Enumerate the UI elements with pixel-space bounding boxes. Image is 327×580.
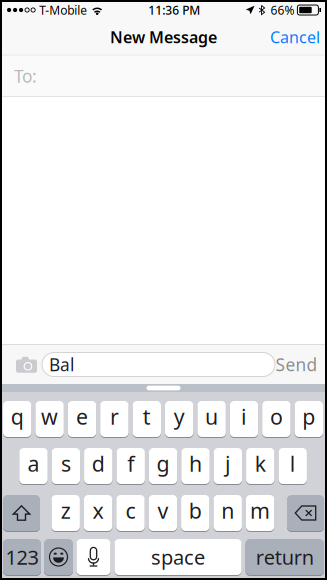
button[interactable]: Dictation xyxy=(76,539,110,575)
button[interactable]: l xyxy=(278,448,307,484)
staticText: b xyxy=(189,496,202,525)
button[interactable]: return xyxy=(245,539,324,575)
button[interactable]: a xyxy=(19,448,48,484)
button[interactable]: b xyxy=(181,495,209,531)
staticText: v xyxy=(157,496,168,525)
staticText: a xyxy=(27,449,39,478)
button[interactable]: Delete xyxy=(287,495,324,531)
staticText: j xyxy=(225,449,231,478)
staticText: y xyxy=(174,402,185,431)
staticText: t xyxy=(143,402,151,431)
staticText: space xyxy=(151,544,205,570)
button[interactable]: Camera xyxy=(11,348,42,380)
button[interactable]: t xyxy=(133,401,161,437)
button[interactable]: j xyxy=(214,448,242,484)
button[interactable]: Send xyxy=(275,348,318,380)
button[interactable]: q xyxy=(3,401,31,437)
button[interactable]: x xyxy=(84,495,112,531)
button[interactable]: h xyxy=(181,448,210,484)
button[interactable]: z xyxy=(51,495,80,531)
button[interactable]: r xyxy=(100,401,129,437)
staticText: l xyxy=(290,449,296,478)
button[interactable]: g xyxy=(149,448,177,484)
button[interactable]: o xyxy=(262,401,291,437)
staticText: Bal xyxy=(49,353,74,376)
staticText: z xyxy=(61,496,71,525)
button[interactable]: f xyxy=(116,448,145,484)
staticText: g xyxy=(157,449,170,478)
staticText: 123 xyxy=(5,544,38,570)
staticText: q xyxy=(11,402,24,431)
staticText: e xyxy=(76,402,88,431)
staticText: T-Mobile xyxy=(39,2,87,18)
button[interactable]: space xyxy=(114,539,241,575)
staticText: 11:36 PM xyxy=(148,2,200,18)
staticText: k xyxy=(255,449,266,478)
staticText: Send xyxy=(275,353,317,376)
button[interactable]: p xyxy=(295,401,323,437)
button[interactable]: n xyxy=(213,495,242,531)
button[interactable]: 123 xyxy=(3,539,41,575)
staticText: f xyxy=(127,449,134,478)
staticText: h xyxy=(189,449,202,478)
button[interactable]: i xyxy=(230,401,258,437)
staticText: i xyxy=(241,402,247,431)
button[interactable]: d xyxy=(84,448,112,484)
button[interactable]: Cancel xyxy=(260,18,327,56)
staticText: New Message xyxy=(110,26,217,48)
staticText: x xyxy=(93,496,104,525)
button[interactable]: Emoji xyxy=(44,539,73,575)
staticText: 66% xyxy=(270,2,294,18)
button[interactable]: e xyxy=(68,401,96,437)
button[interactable]: y xyxy=(165,401,193,437)
staticText: To: xyxy=(14,64,37,87)
button[interactable]: w xyxy=(35,401,64,437)
staticText: r xyxy=(110,402,119,431)
button[interactable]: s xyxy=(52,448,80,484)
staticText: u xyxy=(205,402,218,431)
staticText: s xyxy=(61,449,71,478)
staticText: m xyxy=(250,496,270,525)
button[interactable]: k xyxy=(246,448,274,484)
button[interactable]: m xyxy=(246,495,274,531)
button[interactable]: v xyxy=(149,495,177,531)
staticText: return xyxy=(256,544,314,570)
button[interactable]: u xyxy=(197,401,226,437)
staticText: o xyxy=(270,402,283,431)
staticText: w xyxy=(41,402,58,431)
button[interactable]: Shift xyxy=(3,495,40,531)
staticText: n xyxy=(221,496,234,525)
staticText: c xyxy=(125,496,135,525)
staticText: d xyxy=(92,449,105,478)
button[interactable]: c xyxy=(116,495,145,531)
staticText: Cancel xyxy=(270,26,320,48)
staticText: p xyxy=(302,402,315,431)
